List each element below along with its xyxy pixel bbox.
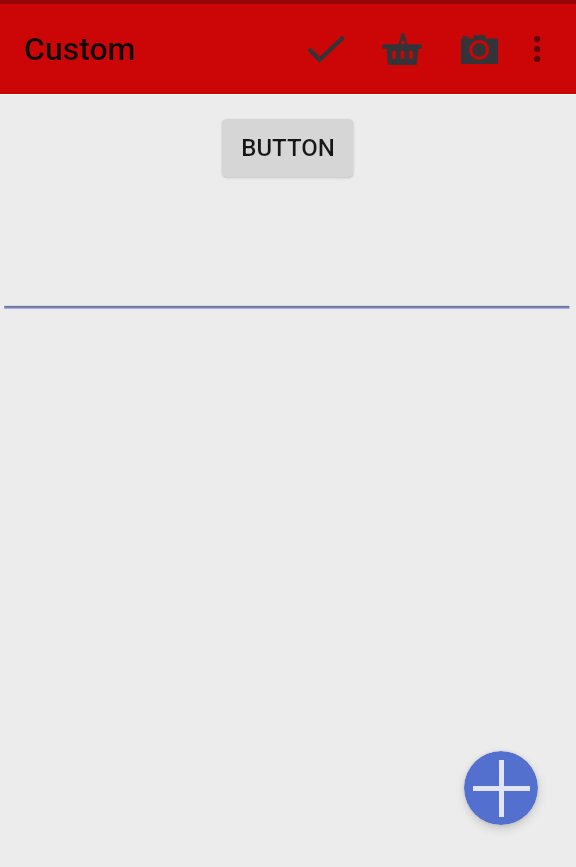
button[interactable]: Basket <box>378 25 425 72</box>
staticText: BUTTON <box>241 134 335 162</box>
button[interactable]: More options <box>517 29 557 69</box>
button[interactable]: Done <box>302 26 349 73</box>
button[interactable]: BUTTON <box>222 119 353 177</box>
button[interactable]: Camera <box>456 26 503 73</box>
button[interactable]: Add <box>464 751 538 825</box>
staticText: Custom <box>24 30 136 68</box>
